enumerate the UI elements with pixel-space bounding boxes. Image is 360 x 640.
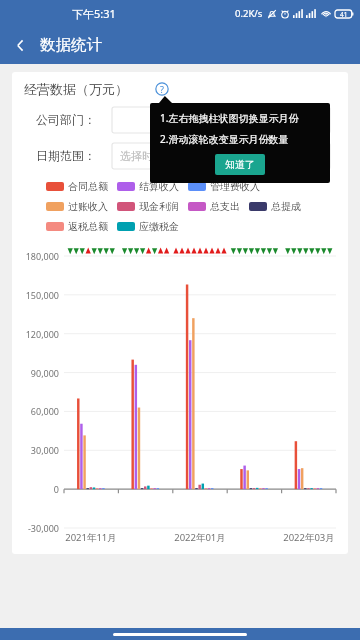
staticText: 日期范围： <box>36 148 106 163</box>
staticText: 合同总额 <box>68 180 108 193</box>
staticText: 60,000 <box>12 405 59 417</box>
staticText: ? <box>160 83 164 95</box>
staticText: -30,000 <box>12 522 59 534</box>
button[interactable]: 结算收入 <box>117 180 179 193</box>
staticText: 总支出 <box>210 200 240 213</box>
button[interactable]: 返税总额 <box>46 220 108 233</box>
staticText: 现金利润 <box>139 200 179 213</box>
staticText: 应缴税金 <box>139 220 179 233</box>
staticText: 2022年03月 <box>277 531 341 544</box>
staticText: 150,000 <box>12 289 59 301</box>
button[interactable]: 现金利润 <box>117 200 179 213</box>
staticText: 0 <box>12 483 59 495</box>
button[interactable]: 选择时间 <box>112 143 330 169</box>
staticText: 选择时间 <box>120 149 164 163</box>
button[interactable] <box>112 107 330 133</box>
staticText: 下午5:31 <box>72 6 116 21</box>
staticText: 过账收入 <box>68 200 108 213</box>
staticText: 经营数据（万元） <box>24 81 128 97</box>
button[interactable]: 管理费收入 <box>188 180 260 193</box>
button[interactable]: Help <box>152 79 172 99</box>
staticText: 数据统计 <box>40 35 102 55</box>
staticText: 管理费收入 <box>210 180 260 193</box>
button[interactable]: 知道了 <box>215 154 265 175</box>
staticText: 2021年11月 <box>59 531 123 544</box>
staticText: 总提成 <box>271 200 301 213</box>
button[interactable]: Back <box>0 26 40 64</box>
staticText: 2.滑动滚轮改变显示月份数量 <box>160 132 289 146</box>
staticText: 0.2K/s <box>235 7 263 20</box>
button[interactable]: 合同总额 <box>46 180 108 193</box>
staticText: 2022年01月 <box>168 531 232 544</box>
staticText: 120,000 <box>12 328 59 340</box>
staticText: 1.左右拖拽柱状图切换显示月份 <box>160 111 299 125</box>
button[interactable]: 总支出 <box>188 200 240 213</box>
staticText: 90,000 <box>12 367 59 379</box>
button[interactable]: 过账收入 <box>46 200 108 213</box>
staticText: 公司部门： <box>36 112 106 127</box>
staticText: 结算收入 <box>139 180 179 193</box>
button[interactable]: 总提成 <box>249 200 301 213</box>
staticText: 返税总额 <box>68 220 108 233</box>
staticText: 180,000 <box>12 250 59 262</box>
button[interactable]: 应缴税金 <box>117 220 179 233</box>
staticText: 41 <box>340 10 348 19</box>
staticText: 30,000 <box>12 444 59 456</box>
staticText: 知道了 <box>225 158 255 171</box>
